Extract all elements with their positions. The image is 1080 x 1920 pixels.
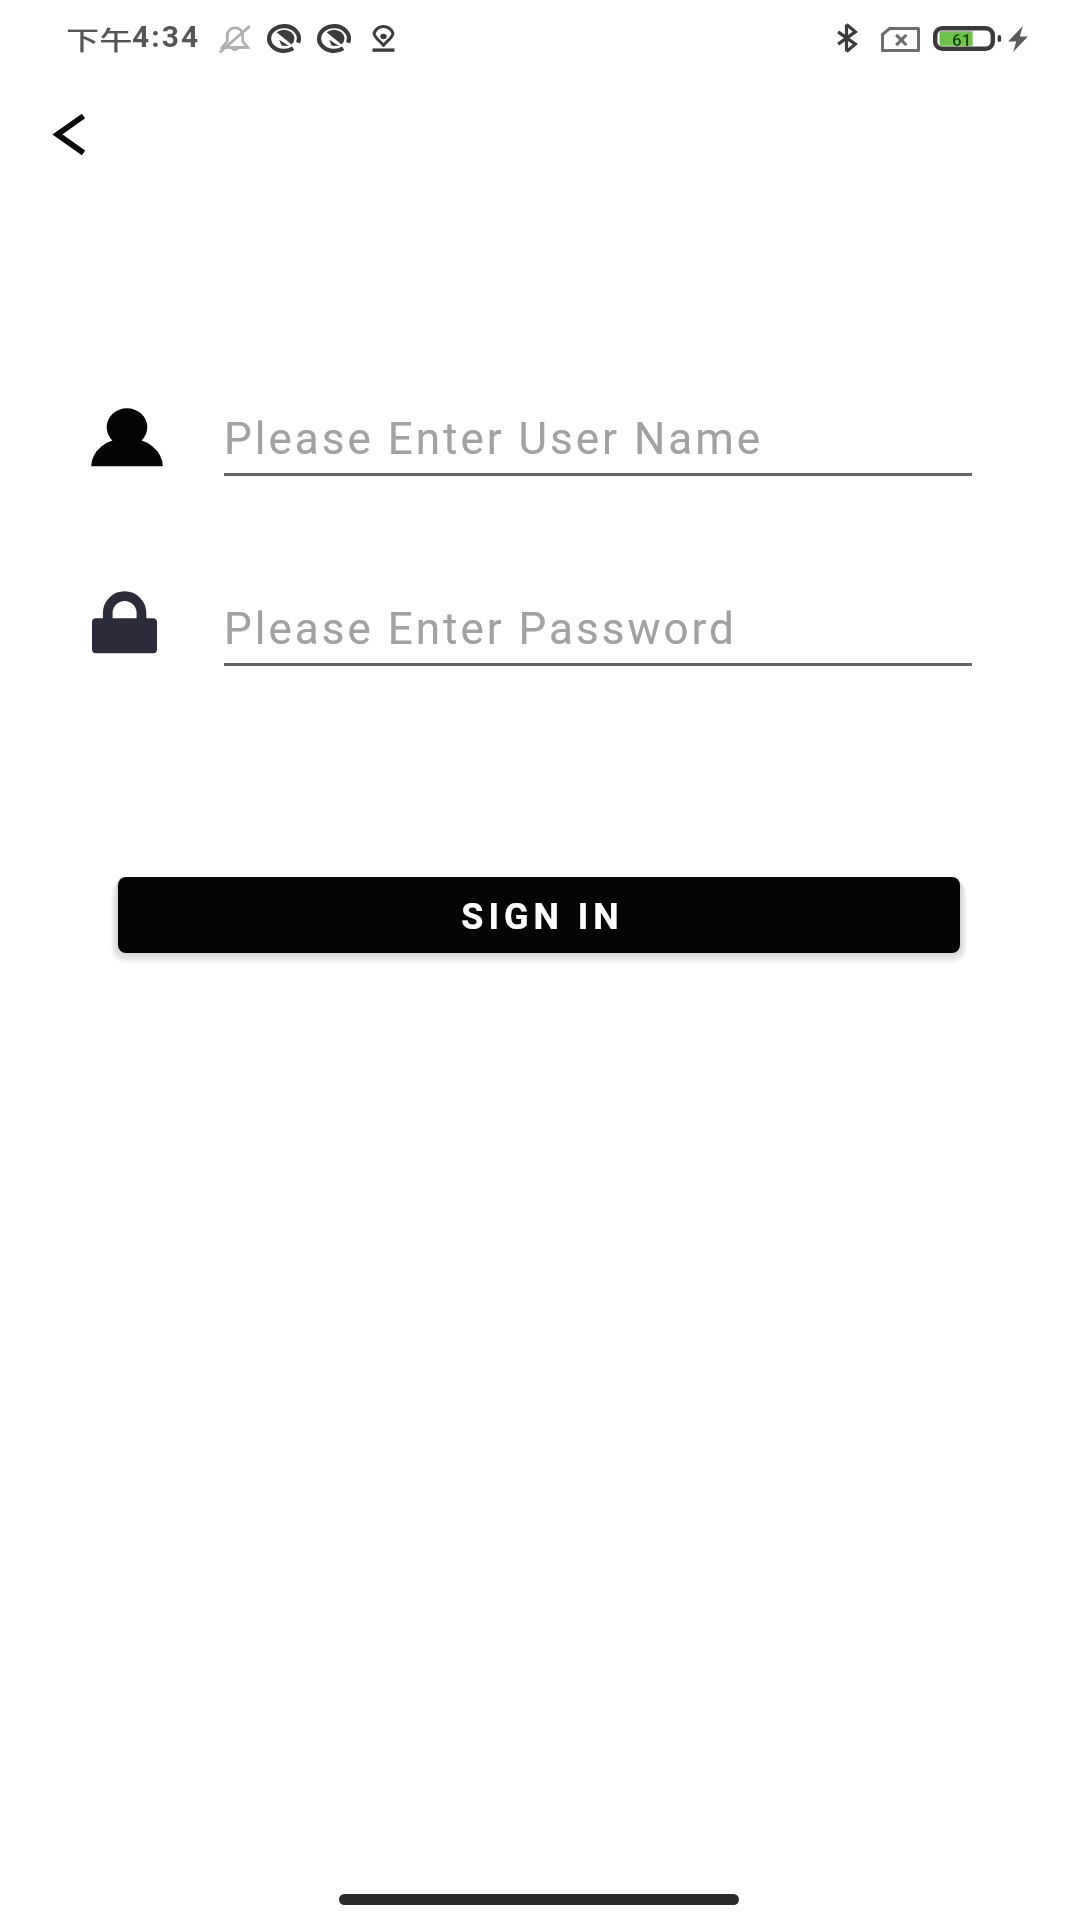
staticText: 61 — [952, 30, 972, 50]
staticText: 下午 — [66, 20, 134, 58]
button[interactable]: Back — [21, 100, 117, 170]
staticText: 4:34 — [132, 19, 201, 54]
staticText: SIGN IN — [461, 896, 624, 938]
staticText: Please Enter User Name — [224, 413, 764, 465]
button[interactable]: SIGN IN — [118, 877, 960, 953]
staticText: Please Enter Password — [224, 603, 737, 655]
